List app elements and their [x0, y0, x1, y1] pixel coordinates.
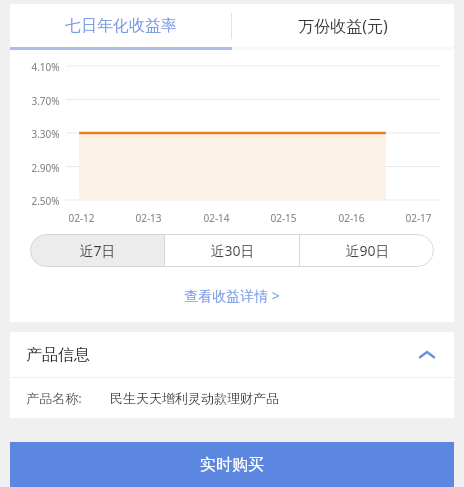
staticText: 实时购买 — [200, 455, 264, 475]
staticText: 产品名称: — [26, 389, 82, 407]
button[interactable]: 七日年化收益率 — [10, 4, 231, 47]
other: Collapse product information — [416, 344, 438, 366]
staticText: 万份收益(元) — [298, 15, 388, 37]
staticText: 2.50% — [31, 194, 60, 206]
staticText: 02-15 — [270, 211, 297, 225]
staticText: 七日年化收益率 — [65, 16, 177, 36]
button[interactable]: 查看收益详情 > — [174, 283, 290, 308]
button[interactable]: 近7日 — [30, 234, 164, 267]
button[interactable]: 实时购买 — [10, 442, 454, 487]
button[interactable]: 产品信息 — [10, 332, 454, 377]
button[interactable]: 近90日 — [300, 234, 434, 267]
button[interactable]: 万份收益(元) — [232, 4, 454, 47]
staticText: 2.90% — [31, 161, 60, 173]
staticText: 02-12 — [68, 211, 95, 225]
staticText: 近7日 — [79, 241, 116, 260]
button[interactable]: 近30日 — [165, 234, 299, 267]
staticText: 02-16 — [338, 211, 365, 225]
staticText: 近90日 — [345, 241, 390, 260]
staticText: 02-13 — [135, 211, 162, 225]
staticText: 查看收益详情 > — [184, 286, 280, 305]
staticText: 02-14 — [203, 211, 230, 225]
staticText: 产品信息 — [26, 345, 90, 365]
staticText: 02-17 — [405, 211, 432, 225]
staticText: 民生天天增利灵动款理财产品 — [110, 390, 279, 406]
staticText: 近30日 — [210, 241, 255, 260]
staticText: 3.30% — [31, 127, 60, 139]
staticText: 3.70% — [31, 94, 60, 106]
staticText: 4.10% — [31, 60, 60, 72]
